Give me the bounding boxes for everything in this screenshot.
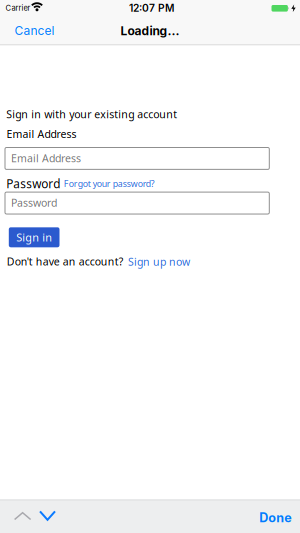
staticText: Email Address — [11, 151, 81, 165]
staticText: Done — [259, 510, 291, 525]
staticText: Carrier — [5, 3, 30, 12]
button[interactable]: Cancel — [8, 18, 60, 43]
staticText: Forgot your password? — [64, 178, 155, 190]
button[interactable]: Sign up now — [128, 254, 190, 269]
button[interactable]: Password — [4, 192, 270, 214]
button[interactable]: Previous field — [9, 506, 37, 526]
button[interactable]: Email Address — [4, 147, 270, 170]
staticText: Loading... — [120, 23, 179, 38]
staticText: Cancel — [14, 23, 54, 38]
button[interactable]: Done — [251, 505, 299, 530]
staticText: Email Address — [6, 127, 76, 141]
staticText: Sign in with your existing account — [6, 107, 177, 121]
staticText: Don't have an account? — [7, 254, 124, 269]
staticText: Password — [11, 196, 57, 210]
staticText: Sign in — [16, 230, 52, 245]
button[interactable]: Sign in — [9, 227, 59, 247]
staticText: 12:07 PM — [129, 2, 174, 14]
button[interactable]: Next field — [34, 504, 61, 527]
button[interactable]: Forgot your password? — [64, 178, 155, 190]
staticText: Password — [6, 176, 60, 192]
staticText: Sign up now — [128, 254, 190, 269]
